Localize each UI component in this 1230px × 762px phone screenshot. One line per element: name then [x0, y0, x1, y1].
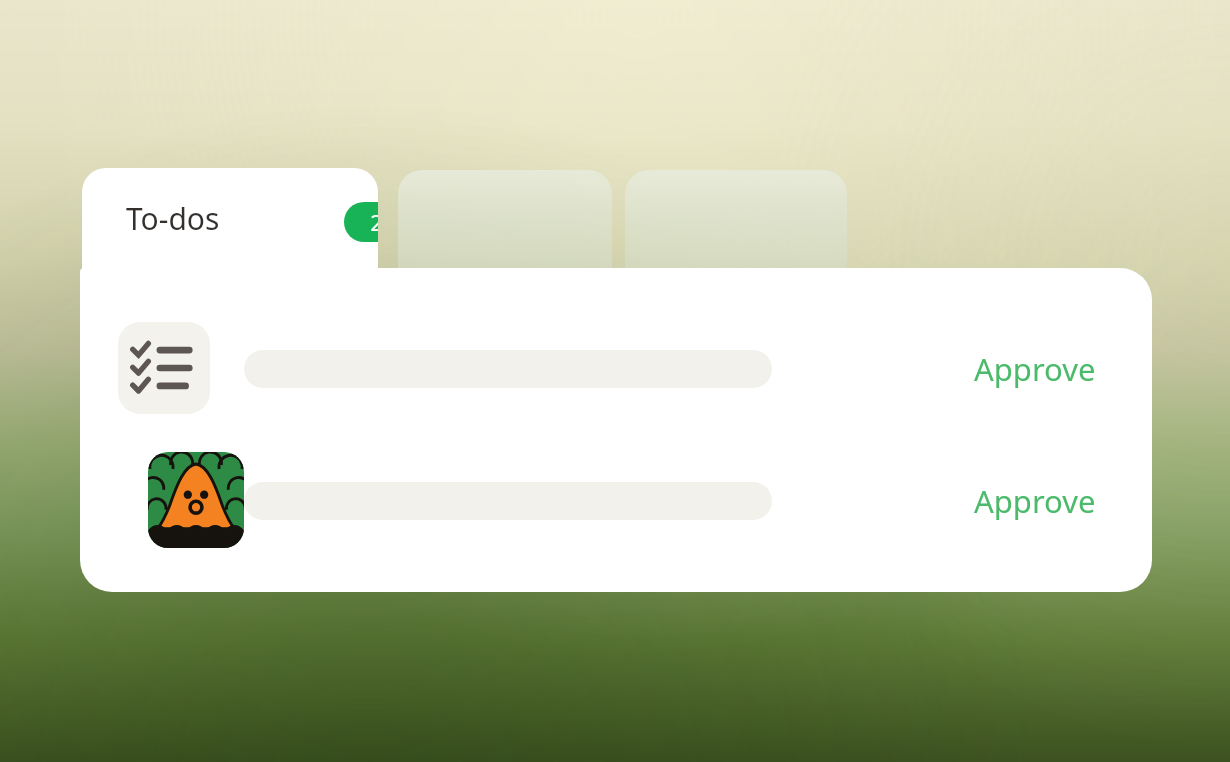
button[interactable]: Avatar — [118, 450, 1114, 550]
button[interactable] — [625, 170, 847, 274]
button[interactable]: Checklist — [118, 322, 1114, 414]
staticText: Approve — [974, 480, 1096, 522]
staticText: 2 — [370, 207, 378, 237]
button[interactable]: To-dos — [82, 168, 378, 288]
other: Avatar — [148, 452, 244, 548]
staticText: To-dos — [126, 198, 220, 239]
other: Checklist — [118, 322, 210, 414]
staticText: Approve — [974, 348, 1096, 390]
button[interactable] — [398, 170, 612, 274]
